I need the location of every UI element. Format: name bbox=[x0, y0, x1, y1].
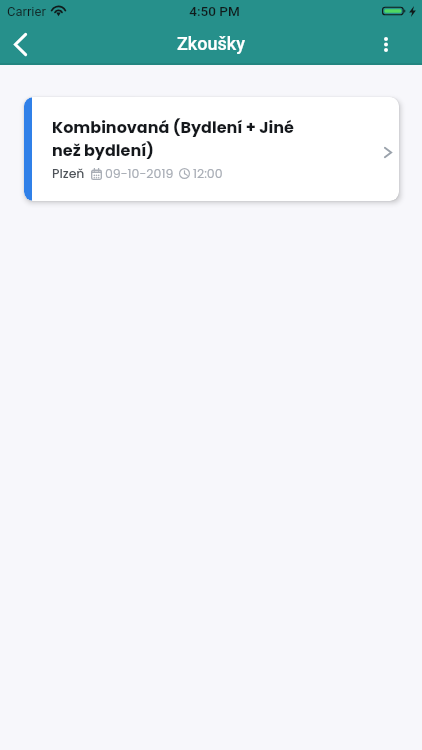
button[interactable]: Kombinovaná (Bydlení + Jiné než bydlení) bbox=[24, 97, 399, 201]
button[interactable]: More options bbox=[373, 23, 399, 65]
button[interactable]: Back bbox=[0, 23, 40, 65]
staticText: Carrier bbox=[7, 4, 46, 19]
staticText: Kombinovaná (Bydlení + Jiné než bydlení) bbox=[52, 116, 302, 161]
staticText: 4:50 PM bbox=[7, 3, 422, 19]
staticText: Plzeň bbox=[52, 165, 85, 182]
staticText: 12:00 bbox=[193, 165, 223, 182]
staticText: Zkoušky bbox=[0, 33, 422, 54]
staticText: 09-10-2019 bbox=[105, 165, 174, 182]
